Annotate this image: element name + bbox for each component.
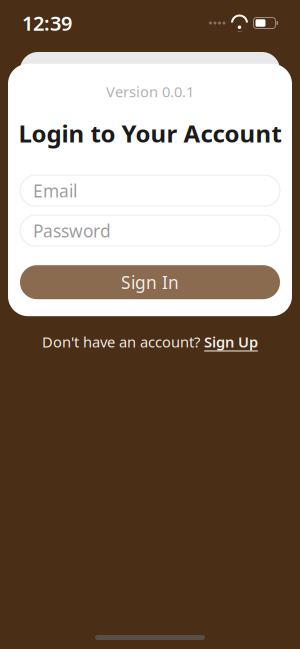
- staticText: 12:39: [22, 10, 72, 36]
- staticText: Password: [33, 219, 111, 242]
- staticText: Email: [33, 179, 77, 202]
- button[interactable]: Sign In: [20, 265, 280, 299]
- staticText: Sign In: [121, 271, 179, 294]
- staticText: Login to Your Account: [18, 117, 281, 149]
- staticText: Don't have an account?: [42, 332, 200, 351]
- staticText: Sign Up: [204, 332, 258, 351]
- staticText: Version 0.0.1: [106, 82, 194, 101]
- button[interactable]: Don't have an account?: [42, 332, 258, 351]
